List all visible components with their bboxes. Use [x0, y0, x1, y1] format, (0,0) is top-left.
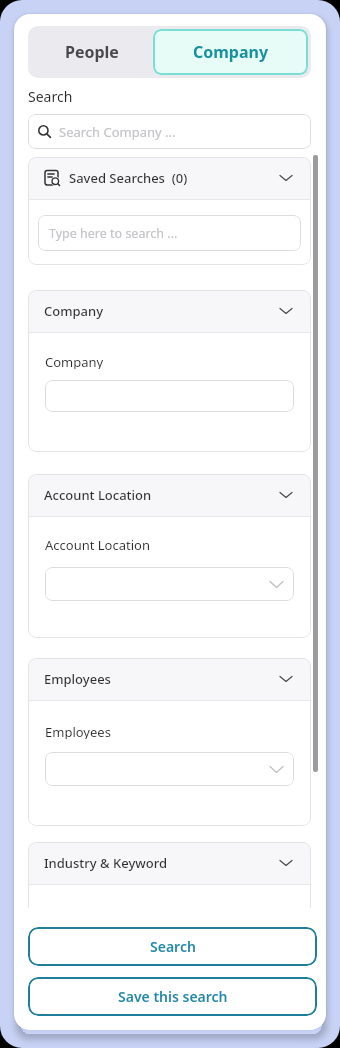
button[interactable]: Save this search — [28, 977, 317, 1016]
button[interactable]: Company — [153, 29, 308, 75]
staticText: People — [65, 41, 119, 63]
button[interactable] — [45, 752, 294, 786]
button[interactable]: Saved Searches (0) — [28, 157, 311, 199]
button[interactable]: Type here to search ... — [38, 215, 301, 251]
button[interactable] — [45, 380, 294, 412]
button[interactable]: Account Location — [28, 474, 311, 516]
button[interactable]: Search Company ... — [28, 114, 311, 149]
staticText: Type here to search ... — [49, 225, 178, 242]
staticText: Company — [45, 353, 104, 369]
button[interactable]: People — [31, 29, 153, 75]
staticText: Search — [150, 937, 196, 956]
staticText: Employees — [44, 670, 111, 688]
staticText: Save this search — [118, 987, 228, 1006]
staticText: Account Location — [45, 536, 150, 552]
button[interactable]: Industry & Keyword — [28, 842, 311, 884]
staticText: Company — [44, 302, 104, 320]
button[interactable]: Employees — [28, 658, 311, 700]
staticText: Employees — [45, 723, 111, 739]
button[interactable]: Company — [28, 290, 311, 332]
staticText: Company — [193, 41, 269, 63]
button[interactable] — [45, 567, 294, 601]
button[interactable]: Search — [28, 927, 317, 966]
staticText: Saved Searches (0) — [69, 169, 188, 187]
staticText: Account Location — [44, 486, 152, 504]
staticText: Search — [28, 87, 73, 103]
staticText: Search Company ... — [59, 123, 176, 141]
staticText: Industry & Keyword — [44, 854, 167, 872]
